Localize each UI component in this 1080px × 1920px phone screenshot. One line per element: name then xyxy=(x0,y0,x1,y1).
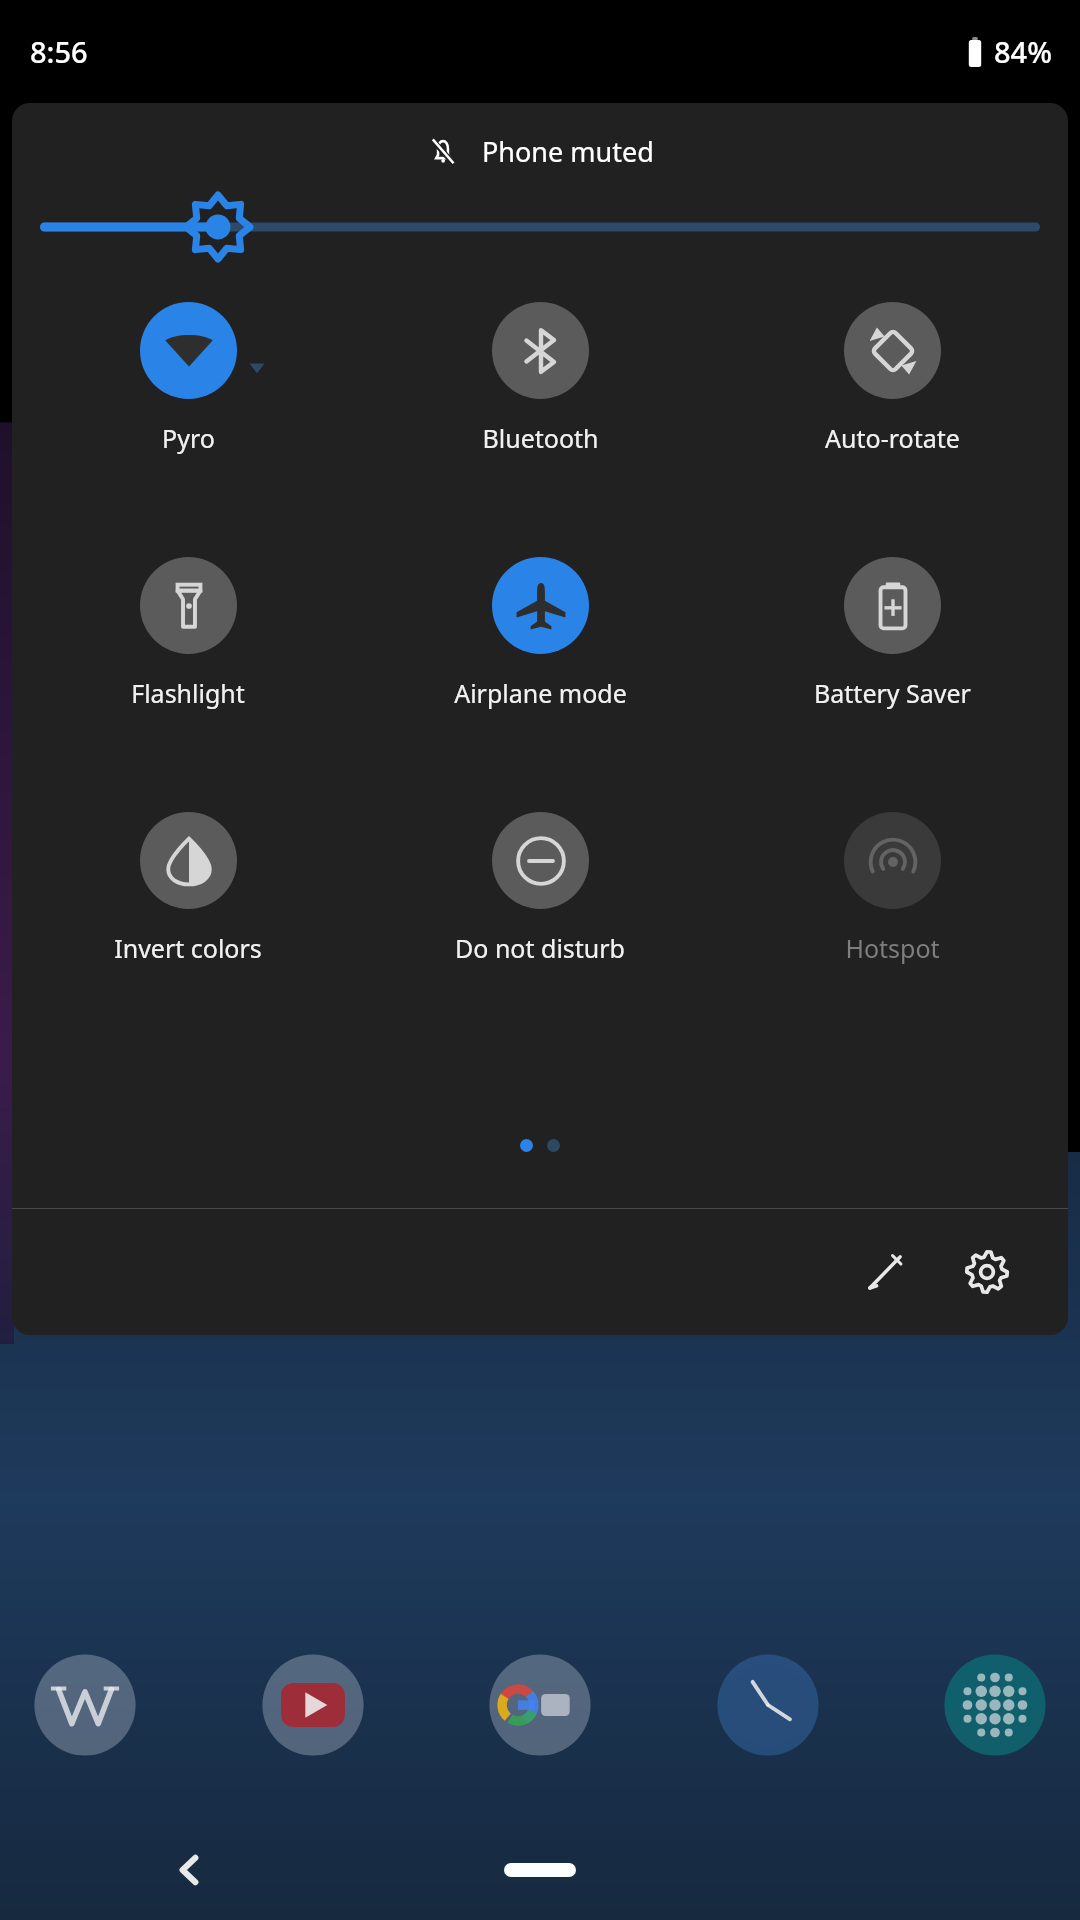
button[interactable]: Brightness xyxy=(40,200,1040,254)
button[interactable]: Edit tiles xyxy=(842,1229,928,1315)
staticText: Hotspot xyxy=(845,931,940,965)
button[interactable]: Bluetooth xyxy=(364,298,716,459)
button[interactable]: Fitbit xyxy=(940,1650,1050,1760)
button[interactable]: Flashlight xyxy=(12,553,364,714)
button[interactable]: Pyro xyxy=(12,298,364,459)
button[interactable]: Auto-rotate xyxy=(716,298,1068,459)
staticText: Airplane mode xyxy=(454,676,627,710)
button[interactable]: Wikipedia xyxy=(30,1650,140,1760)
staticText: 84% xyxy=(994,32,1052,71)
staticText: Phone muted xyxy=(482,133,654,170)
button[interactable]: Clock xyxy=(713,1650,823,1760)
button[interactable]: Battery Saver xyxy=(716,553,1068,714)
staticText: Flashlight xyxy=(131,676,245,710)
button[interactable]: YouTube xyxy=(258,1650,368,1760)
button[interactable]: Settings xyxy=(944,1229,1030,1315)
staticText: Auto-rotate xyxy=(825,421,960,455)
button[interactable]: Home xyxy=(504,1863,576,1877)
button[interactable]: Hotspot xyxy=(716,808,1068,969)
staticText: 8:56 xyxy=(30,32,88,71)
button[interactable]: Back xyxy=(158,1838,222,1902)
button[interactable]: Airplane mode xyxy=(364,553,716,714)
staticText: Pyro xyxy=(162,421,215,455)
staticText: Bluetooth xyxy=(482,421,599,455)
button[interactable]: Invert colors xyxy=(12,808,364,969)
button[interactable]: Google Pay xyxy=(485,1650,595,1760)
staticText: Invert colors xyxy=(114,931,262,965)
staticText: Battery Saver xyxy=(814,676,971,710)
staticText: Do not disturb xyxy=(455,931,625,965)
button[interactable]: Do not disturb xyxy=(364,808,716,969)
